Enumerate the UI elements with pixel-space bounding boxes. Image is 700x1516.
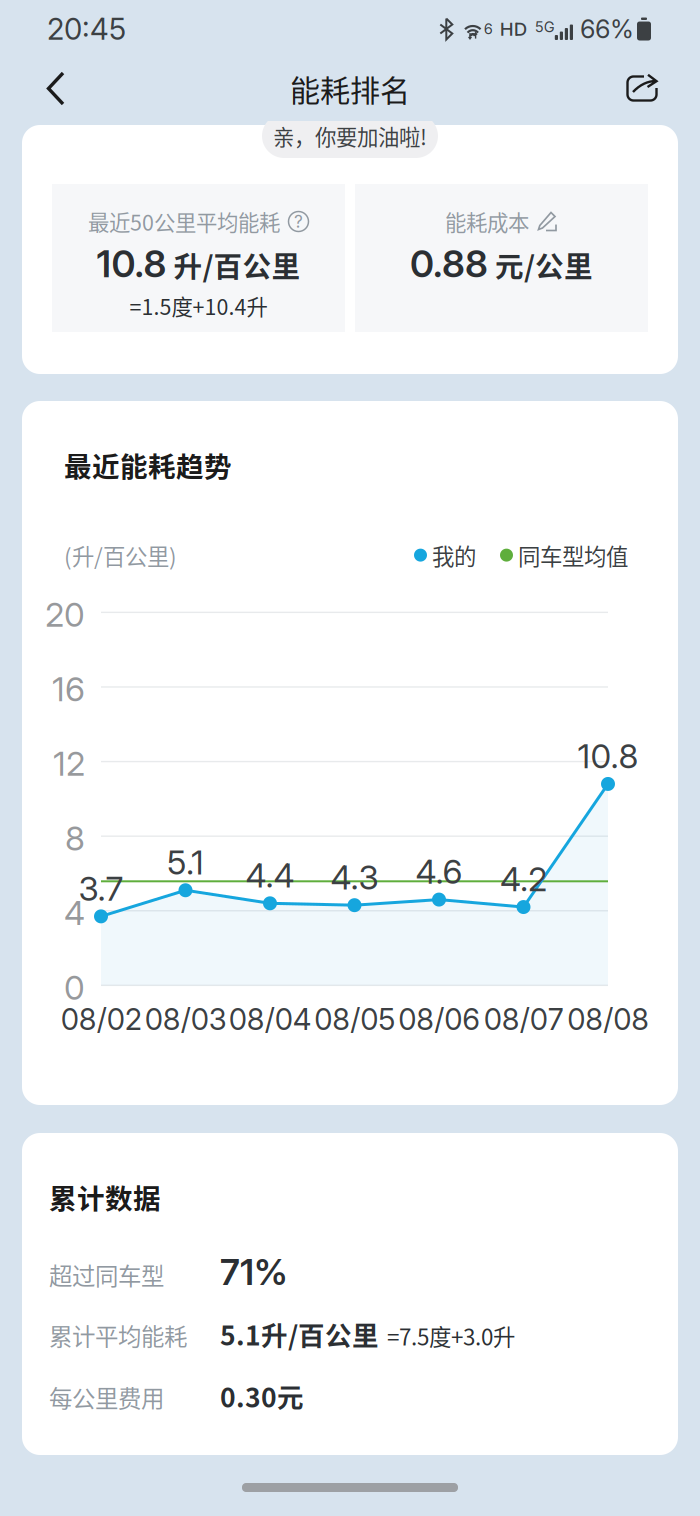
staticText: 08/06	[398, 1002, 480, 1037]
staticText: HD	[500, 18, 527, 40]
button[interactable]: 分享	[610, 62, 674, 115]
staticText: 3.7	[78, 868, 123, 909]
staticText: 12	[53, 744, 85, 784]
staticText: 4.3	[330, 857, 378, 897]
staticText: 同车型均值	[518, 539, 628, 571]
staticText: 6	[484, 20, 493, 38]
staticText: 08/04	[229, 1002, 312, 1037]
staticText: 升/百公里	[173, 244, 300, 285]
staticText: 20:45	[47, 11, 126, 47]
staticText: 累计数据	[49, 1177, 161, 1217]
button[interactable]: 返回	[26, 59, 85, 117]
staticText: 66%	[580, 14, 634, 44]
staticText: 66%	[580, 14, 634, 44]
staticText: =7.5度+3.0升	[387, 1319, 515, 1352]
staticText: 0.88	[410, 241, 488, 286]
staticText: 08/05	[314, 1002, 395, 1037]
staticText: 我的	[432, 539, 476, 571]
staticText: 5G	[535, 18, 555, 36]
staticText: 5G	[535, 18, 555, 36]
staticText: 8	[65, 818, 85, 858]
staticText: 亲，你要加油啦!	[273, 120, 427, 151]
staticText: 最近能耗趋势	[64, 445, 232, 485]
staticText: ?	[294, 211, 303, 232]
staticText: 累计平均能耗	[49, 1318, 187, 1352]
staticText: 16	[52, 669, 85, 709]
staticText: 能耗成本	[445, 206, 529, 237]
staticText: 4.2	[500, 859, 547, 899]
staticText: 4.4	[245, 855, 294, 896]
staticText: 4	[64, 893, 85, 933]
staticText: 08/08	[567, 1002, 649, 1037]
staticText: 元/公里	[495, 244, 593, 285]
staticText: 5.1升/百公里	[220, 1315, 379, 1353]
staticText: 10.8	[577, 736, 638, 776]
staticText: 20:45	[47, 11, 126, 47]
staticText: (升/百公里)	[64, 539, 177, 571]
staticText: 5.1	[167, 842, 204, 883]
button[interactable]: 分享	[610, 62, 674, 115]
staticText: 08/02	[61, 1002, 142, 1037]
staticText: 超过同车型	[49, 1258, 164, 1292]
staticText: 最近50公里平均能耗	[88, 206, 280, 237]
staticText: 10.8	[96, 241, 166, 286]
staticText: 每公里费用	[49, 1380, 164, 1414]
staticText: 能耗排名	[290, 67, 410, 110]
staticText: 08/03	[145, 1002, 227, 1037]
staticText: 能耗排名	[290, 67, 410, 110]
staticText: 71%	[220, 1250, 288, 1294]
staticText: 0	[64, 967, 85, 1008]
staticText: 4.6	[415, 852, 462, 892]
staticText: 20	[45, 594, 85, 635]
staticText: =1.5度+10.4升	[129, 290, 267, 321]
staticText: 6	[484, 20, 493, 38]
staticText: HD	[500, 18, 527, 40]
button[interactable]: 返回	[26, 59, 85, 117]
staticText: 08/07	[484, 1002, 564, 1037]
staticText: 0.30元	[220, 1377, 304, 1415]
